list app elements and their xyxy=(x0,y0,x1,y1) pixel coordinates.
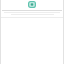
button[interactable]: App logo xyxy=(28,1,36,8)
button[interactable] xyxy=(2,10,62,15)
